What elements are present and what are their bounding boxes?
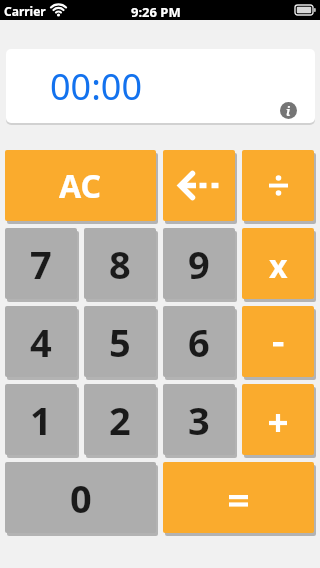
button[interactable]: 4 [5, 306, 77, 377]
button[interactable] [242, 150, 314, 221]
staticText: 4 [30, 316, 52, 368]
staticText: 1 [30, 394, 52, 446]
staticText: 3 [188, 394, 210, 446]
staticText: Carrier [4, 3, 46, 19]
button[interactable]: 6 [163, 306, 235, 377]
button[interactable]: x [242, 228, 314, 299]
staticText: i [286, 103, 291, 119]
staticText: 9:26 PM [131, 3, 181, 21]
staticText: 5 [109, 316, 131, 368]
staticText: x [269, 244, 288, 288]
button[interactable]: 1 [5, 384, 77, 455]
button[interactable]: 8 [84, 228, 156, 299]
button[interactable] [242, 384, 314, 455]
staticText: 9 [188, 238, 210, 290]
button[interactable]: 5 [84, 306, 156, 377]
staticText: 2 [109, 394, 131, 446]
staticText: 0 [70, 472, 92, 524]
button[interactable]: 2 [84, 384, 156, 455]
button[interactable]: i [280, 102, 297, 119]
button[interactable]: AC [5, 150, 156, 221]
button[interactable]: 0 [5, 462, 156, 533]
staticText: 6 [188, 316, 210, 368]
staticText: 00:00 [50, 62, 143, 111]
staticText: AC [59, 164, 102, 208]
staticText: 8 [109, 238, 131, 290]
button[interactable]: 3 [163, 384, 235, 455]
staticText: 7 [30, 238, 52, 290]
button[interactable] [242, 306, 314, 377]
button[interactable]: 9 [163, 228, 235, 299]
button[interactable] [163, 462, 314, 533]
button[interactable]: 7 [5, 228, 77, 299]
button[interactable] [163, 150, 235, 221]
